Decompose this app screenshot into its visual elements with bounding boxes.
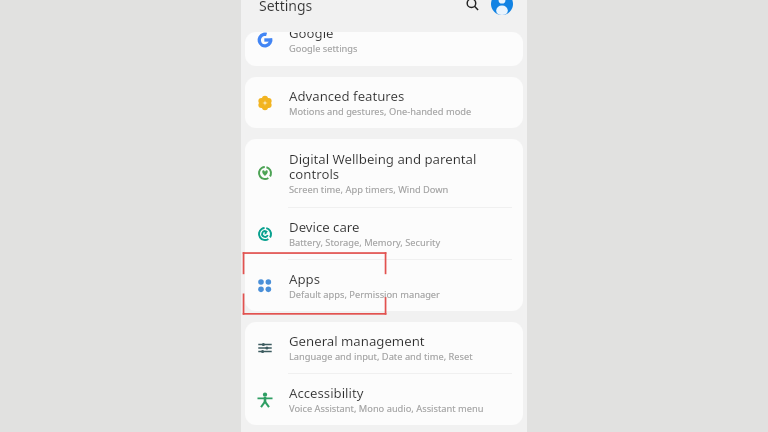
staticText: Accessibility — [289, 384, 364, 402]
staticText: Language and input, Date and time, Reset — [289, 350, 473, 363]
button[interactable]: Apps — [245, 260, 523, 311]
button[interactable]: Advanced features — [245, 77, 523, 128]
button[interactable]: Search — [461, 0, 483, 15]
staticText: General management — [289, 332, 425, 350]
staticText: Battery, Storage, Memory, Security — [289, 236, 441, 249]
staticText: Digital Wellbeing and parental controls — [289, 150, 509, 183]
button[interactable]: Google — [245, 32, 523, 65]
staticText: Google — [289, 32, 334, 42]
button[interactable]: Device care — [245, 208, 523, 259]
button[interactable]: General management — [245, 322, 523, 373]
staticText: Default apps, Permission manager — [289, 288, 440, 301]
staticText: Settings — [259, 0, 313, 15]
staticText: Google settings — [289, 42, 358, 55]
staticText: Motions and gestures, One-handed mode — [289, 105, 472, 118]
button[interactable]: Accessibility — [245, 374, 523, 425]
staticText: Advanced features — [289, 87, 405, 105]
staticText: Apps — [289, 270, 320, 288]
staticText: Screen time, App timers, Wind Down — [289, 183, 449, 196]
button[interactable]: Account — [491, 0, 513, 15]
staticText: Voice Assistant, Mono audio, Assistant m… — [289, 402, 484, 415]
button[interactable]: Digital Wellbeing and parental controls — [245, 139, 523, 207]
staticText: Device care — [289, 218, 360, 236]
